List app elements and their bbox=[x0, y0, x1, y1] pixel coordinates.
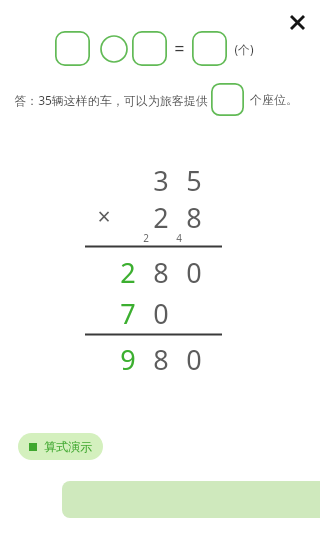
button[interactable]: Operator input bbox=[100, 35, 128, 63]
button[interactable]: Bottom action bar bbox=[62, 481, 320, 518]
button[interactable]: 算式演示 bbox=[18, 433, 103, 460]
staticText: 2 bbox=[120, 254, 136, 291]
staticText: 2 bbox=[153, 199, 169, 236]
staticText: 2 bbox=[143, 231, 149, 245]
staticText: 9 bbox=[120, 341, 136, 378]
staticText: 7 bbox=[120, 295, 136, 332]
staticText: 4 bbox=[176, 231, 182, 245]
staticText: 8 bbox=[153, 341, 169, 378]
staticText: × bbox=[97, 200, 111, 231]
staticText: 算式演示 bbox=[44, 439, 92, 454]
staticText: 8 bbox=[153, 254, 169, 291]
staticText: 0 bbox=[186, 341, 202, 378]
button[interactable]: Result input bbox=[192, 31, 227, 66]
button[interactable]: Second number input bbox=[132, 31, 167, 66]
staticText: 0 bbox=[153, 295, 169, 332]
staticText: = bbox=[174, 36, 185, 61]
staticText: 个座位。 bbox=[250, 92, 298, 107]
button[interactable]: Close bbox=[283, 8, 311, 36]
button[interactable]: First number input bbox=[55, 31, 90, 66]
staticText: 5 bbox=[186, 162, 202, 199]
staticText: 3 bbox=[153, 162, 169, 199]
staticText: 8 bbox=[186, 199, 202, 236]
staticText: 答：35辆这样的车，可以为旅客提供 bbox=[14, 92, 208, 108]
staticText: (个) bbox=[234, 41, 254, 57]
button[interactable]: Seats answer input bbox=[211, 83, 244, 116]
staticText: 0 bbox=[186, 254, 202, 291]
